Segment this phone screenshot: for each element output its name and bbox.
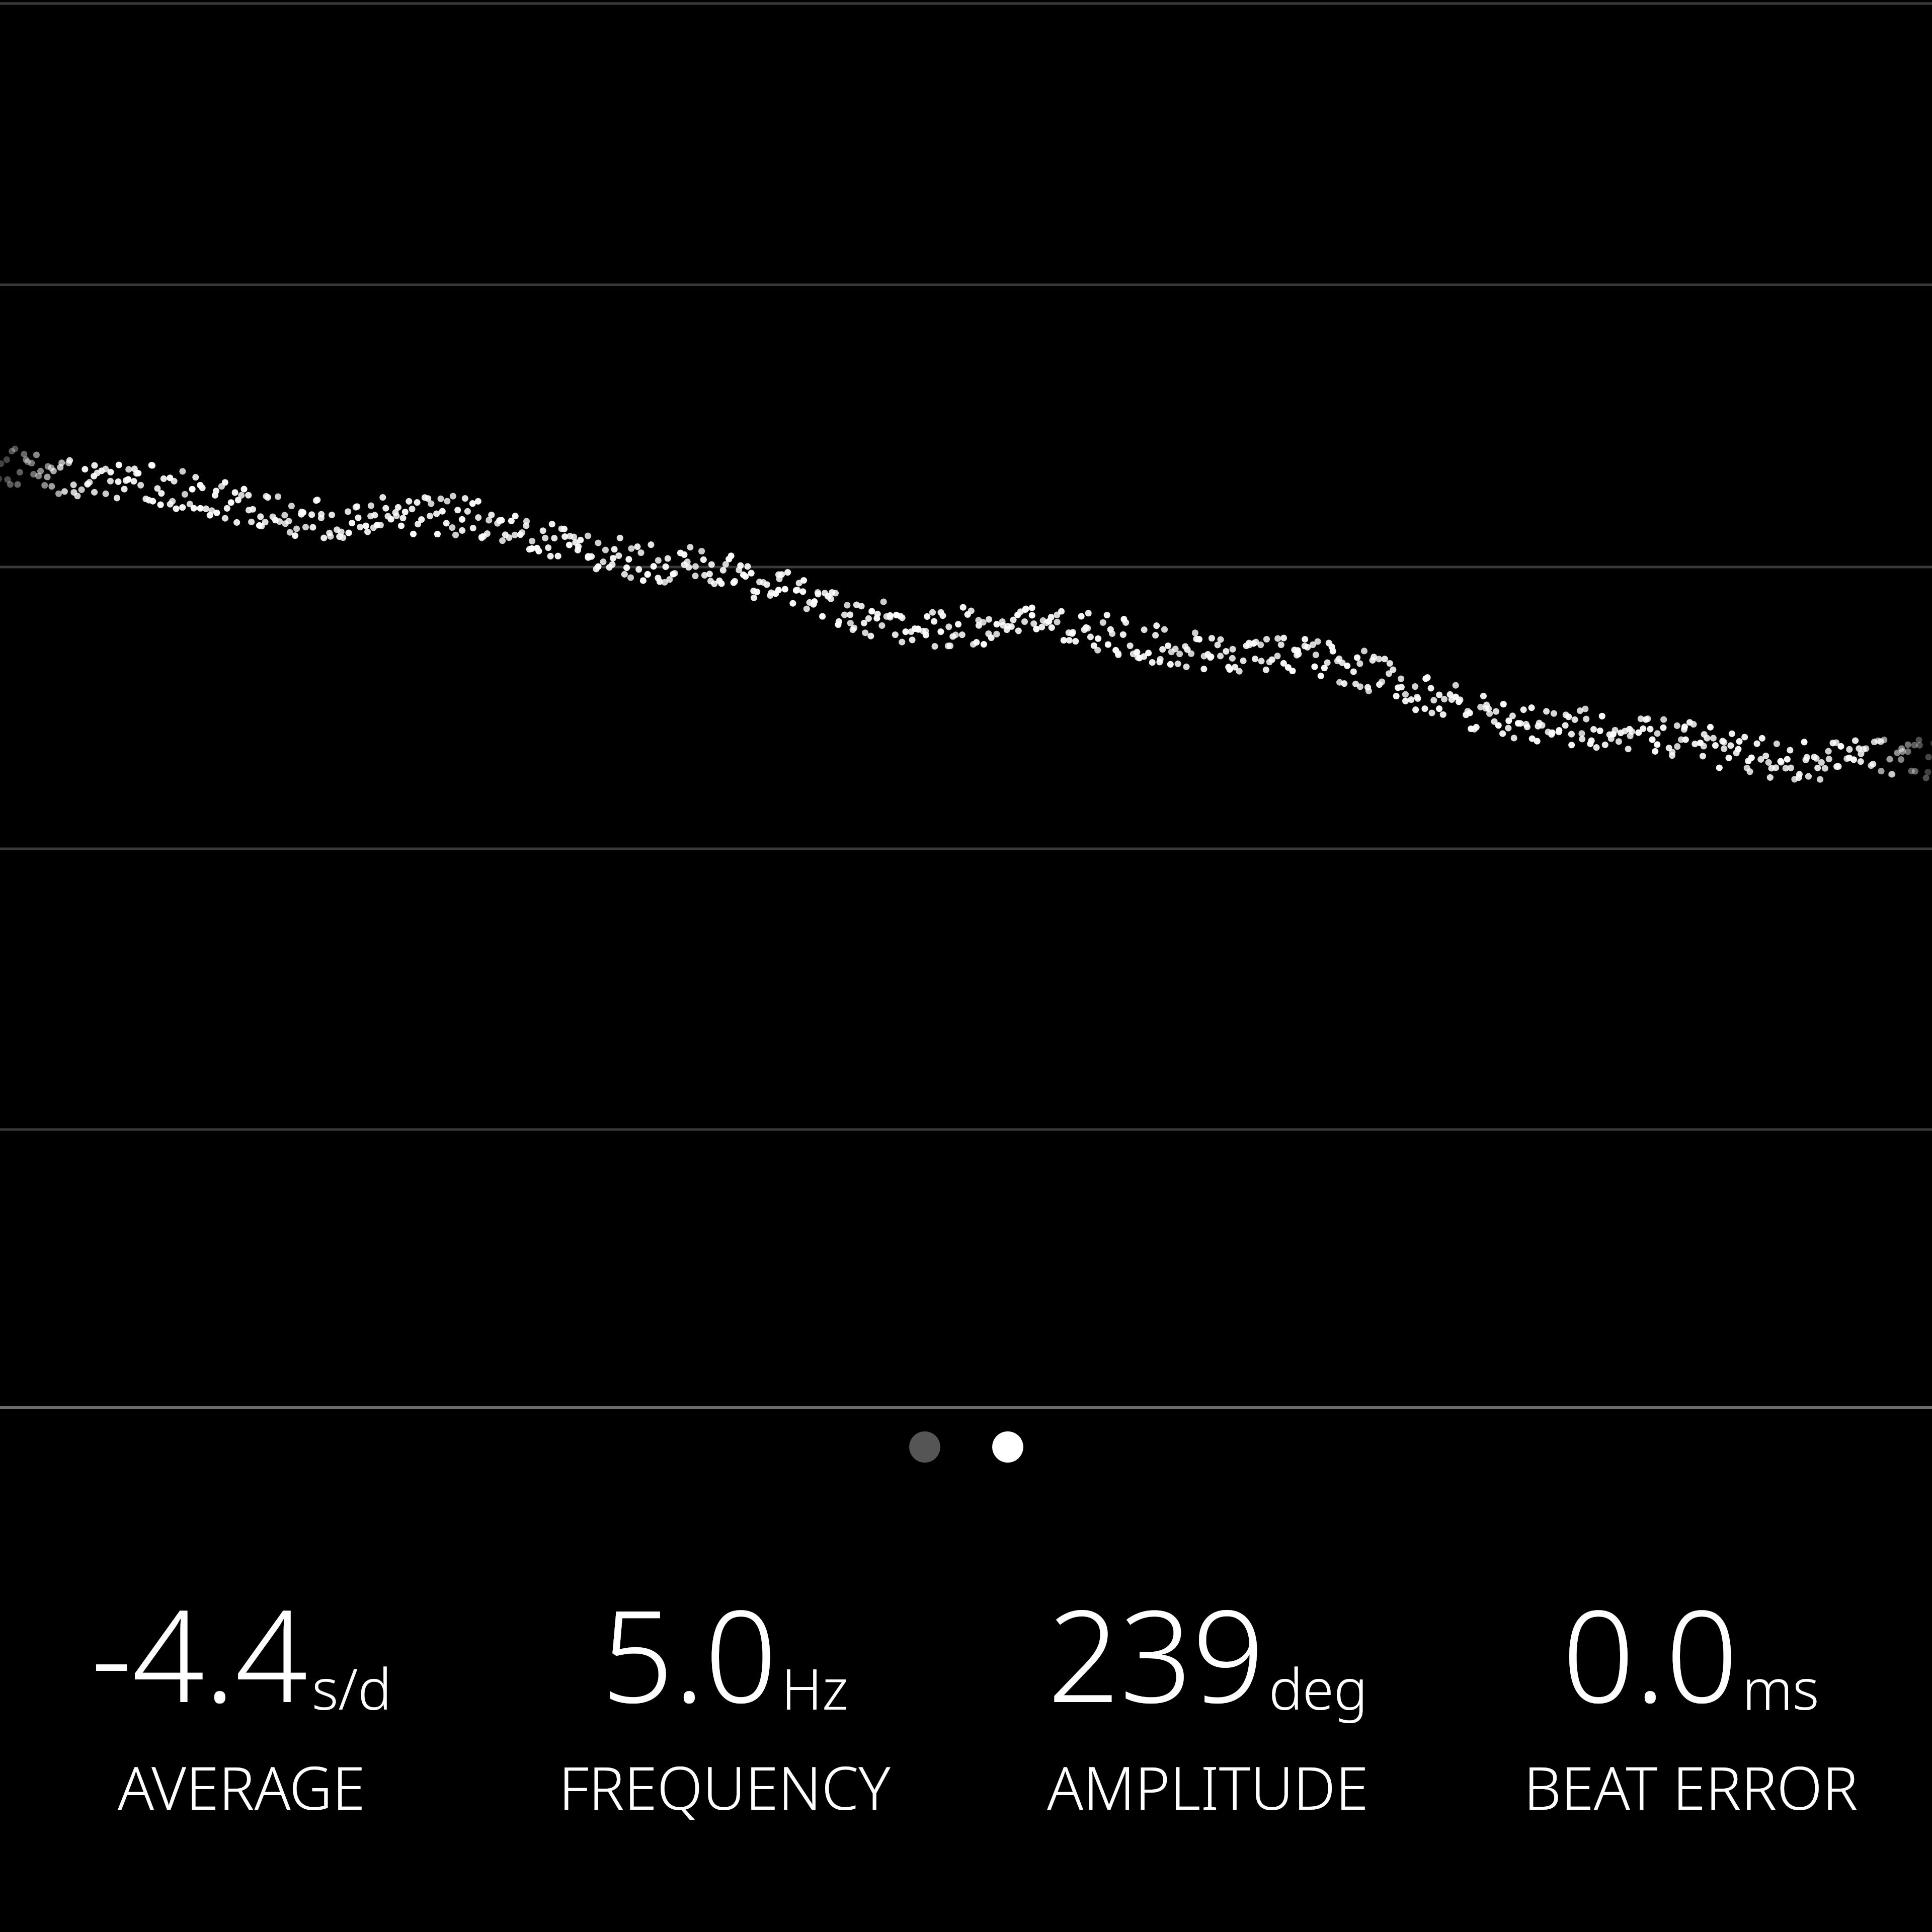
button[interactable]: 239 — [966, 1550, 1449, 1932]
staticText: AMPLITUDE — [1047, 1746, 1369, 1827]
staticText: 5.0 — [601, 1567, 777, 1739]
button[interactable]: Page 2 of 2 — [909, 1431, 1023, 1463]
staticText: 239 — [1048, 1567, 1265, 1739]
staticText: FREQUENCY — [558, 1746, 891, 1827]
staticText: 0.0 — [1562, 1567, 1738, 1739]
staticText: deg — [1269, 1649, 1367, 1726]
staticText: s/d — [312, 1649, 392, 1726]
button[interactable]: 5.0 — [483, 1550, 966, 1932]
staticText: -4.4 — [91, 1567, 308, 1739]
staticText: ms — [1742, 1649, 1819, 1726]
button[interactable] — [0, 0, 1932, 1409]
staticText: Hz — [781, 1649, 848, 1726]
staticText: AVERAGE — [118, 1746, 365, 1827]
button[interactable]: -4.4 — [0, 1550, 483, 1932]
staticText: BEAT ERROR — [1523, 1746, 1858, 1827]
button[interactable]: 0.0 — [1449, 1550, 1932, 1932]
